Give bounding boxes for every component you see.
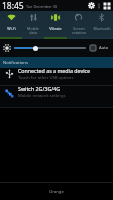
staticText: Mobile data	[27, 26, 39, 36]
staticText: Wi-Fi	[7, 26, 16, 31]
staticText: Bluetooth	[93, 26, 111, 31]
staticText: Connected as a media device	[18, 67, 91, 74]
button[interactable]: Screen rotation	[67, 11, 90, 39]
staticText: Tue December 30	[26, 4, 58, 9]
staticText: Notifications	[3, 60, 28, 66]
staticText: Vibrate	[49, 26, 62, 31]
staticText: Switch 2G/3G/4G	[18, 85, 61, 92]
staticText: Touch for other USB options	[18, 75, 74, 81]
button[interactable]: Auto	[90, 45, 109, 51]
staticText: 18:45	[2, 0, 24, 11]
button[interactable]: Settings	[88, 2, 95, 9]
button[interactable]: Bluetooth	[90, 11, 113, 39]
staticText: Screen rotation	[72, 26, 86, 36]
button[interactable]: Mobile data	[22, 11, 44, 39]
button[interactable]: Switch 2G/3G/4G	[0, 86, 113, 108]
button[interactable]: Connected as a media device	[0, 68, 113, 86]
button[interactable]: Brightness	[3, 44, 11, 52]
staticText: Auto	[99, 45, 109, 51]
button[interactable]: Quick settings	[103, 2, 111, 10]
staticText: Orange	[49, 189, 64, 195]
staticText: Mobile network settings	[18, 93, 66, 99]
button[interactable]: Wi-Fi	[0, 11, 22, 39]
button[interactable]: Vibrate	[44, 11, 67, 39]
